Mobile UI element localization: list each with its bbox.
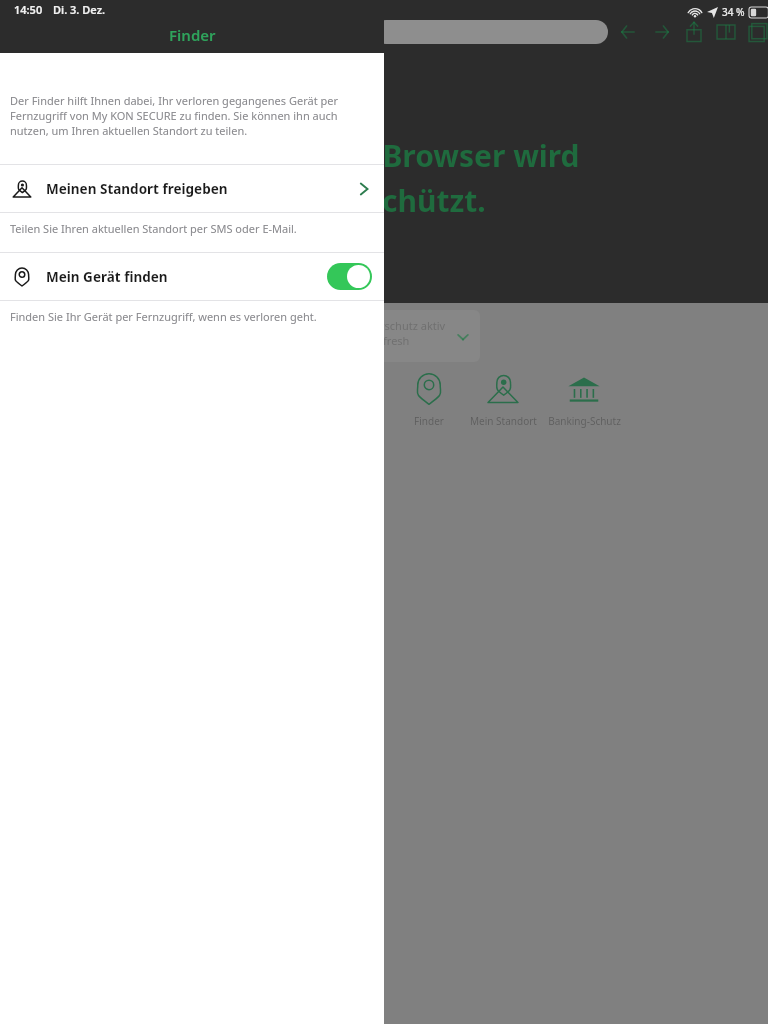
staticText: Banking-Schutz (548, 414, 621, 428)
staticText: Finder (414, 414, 444, 428)
staticText: Mein Gerät finden (46, 268, 168, 286)
staticText: Der Finder hilft Ihnen dabei, Ihr verlor… (10, 93, 374, 138)
staticText: Meinen Standort freigeben (46, 180, 228, 198)
staticText: Finder (169, 25, 216, 45)
staticText: Di. 3. Dez. (53, 2, 105, 17)
staticText: Ihr Browser wird (330, 135, 580, 176)
button[interactable]: Teilen (680, 18, 708, 46)
staticText: Auto-Refresh (342, 333, 410, 348)
button[interactable]: Browserschutz aktiv (330, 310, 480, 362)
button[interactable]: Adressleiste (374, 20, 608, 44)
button[interactable]: Mein Gerät finden einschalten (327, 263, 372, 290)
staticText: 14:50 (14, 2, 43, 17)
button[interactable]: Banking-Schutz (542, 372, 626, 428)
button[interactable]: Meinen Standort freigeben (0, 165, 384, 212)
button[interactable]: Mein Gerät finden (0, 253, 384, 300)
staticText: 34 % (722, 5, 745, 19)
staticText: Mein Standort (470, 414, 537, 428)
staticText: Finden Sie Ihr Gerät per Fernzugriff, we… (10, 309, 317, 324)
button[interactable]: Finder (394, 372, 464, 428)
staticText: Teilen Sie Ihren aktuellen Standort per … (10, 221, 297, 236)
button[interactable]: Vorwärts (648, 18, 676, 46)
staticText: Browserschutz aktiv (342, 318, 446, 333)
staticText: geschützt. (330, 180, 486, 221)
button[interactable]: Tabs (744, 18, 768, 46)
button[interactable]: Lesezeichen (712, 18, 740, 46)
button[interactable]: Mein Standort (464, 372, 542, 428)
button[interactable]: Zurück (614, 18, 642, 46)
